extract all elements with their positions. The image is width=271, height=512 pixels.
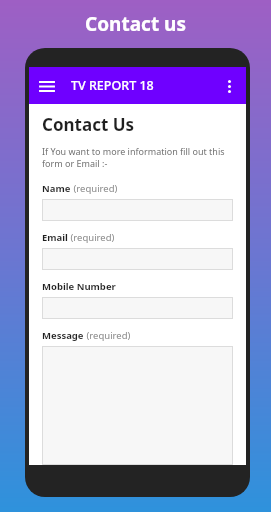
staticText: Contact Us — [42, 113, 135, 136]
staticText: Mobile Number — [42, 280, 116, 293]
button[interactable] — [42, 248, 233, 270]
staticText: Contact us — [85, 11, 186, 37]
staticText: (required) — [71, 182, 118, 195]
button[interactable]: Open navigation menu — [34, 73, 60, 99]
button[interactable] — [42, 297, 233, 319]
staticText: Name — [42, 182, 71, 195]
button[interactable]: More options — [216, 73, 242, 99]
staticText: Message — [42, 329, 84, 342]
button[interactable] — [42, 199, 233, 221]
staticText: (required) — [84, 329, 131, 342]
staticText: TV REPORT 18 — [71, 77, 154, 94]
staticText: (required) — [68, 231, 115, 244]
staticText: Email — [42, 231, 68, 244]
button[interactable]: Message input — [42, 346, 233, 465]
staticText: If You want to more information fill out… — [42, 145, 233, 170]
